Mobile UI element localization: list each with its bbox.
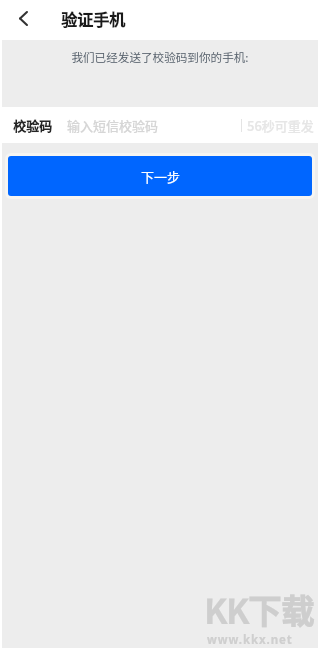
staticText: www.kkx.net <box>207 632 293 648</box>
staticText: 56秒可重发 <box>247 116 314 135</box>
button[interactable]: 下一步 <box>8 156 312 196</box>
staticText: 我们已经发送了校验码到你的手机: <box>0 49 320 66</box>
staticText: 验证手机 <box>61 7 126 30</box>
button[interactable]: Back <box>0 0 46 40</box>
staticText: KK下载 <box>204 586 314 634</box>
button[interactable]: 56秒可重发 <box>241 116 320 135</box>
staticText: 校验码 <box>13 116 53 135</box>
staticText: 下一步 <box>141 167 181 186</box>
staticText: 输入短信校验码 <box>67 116 159 135</box>
